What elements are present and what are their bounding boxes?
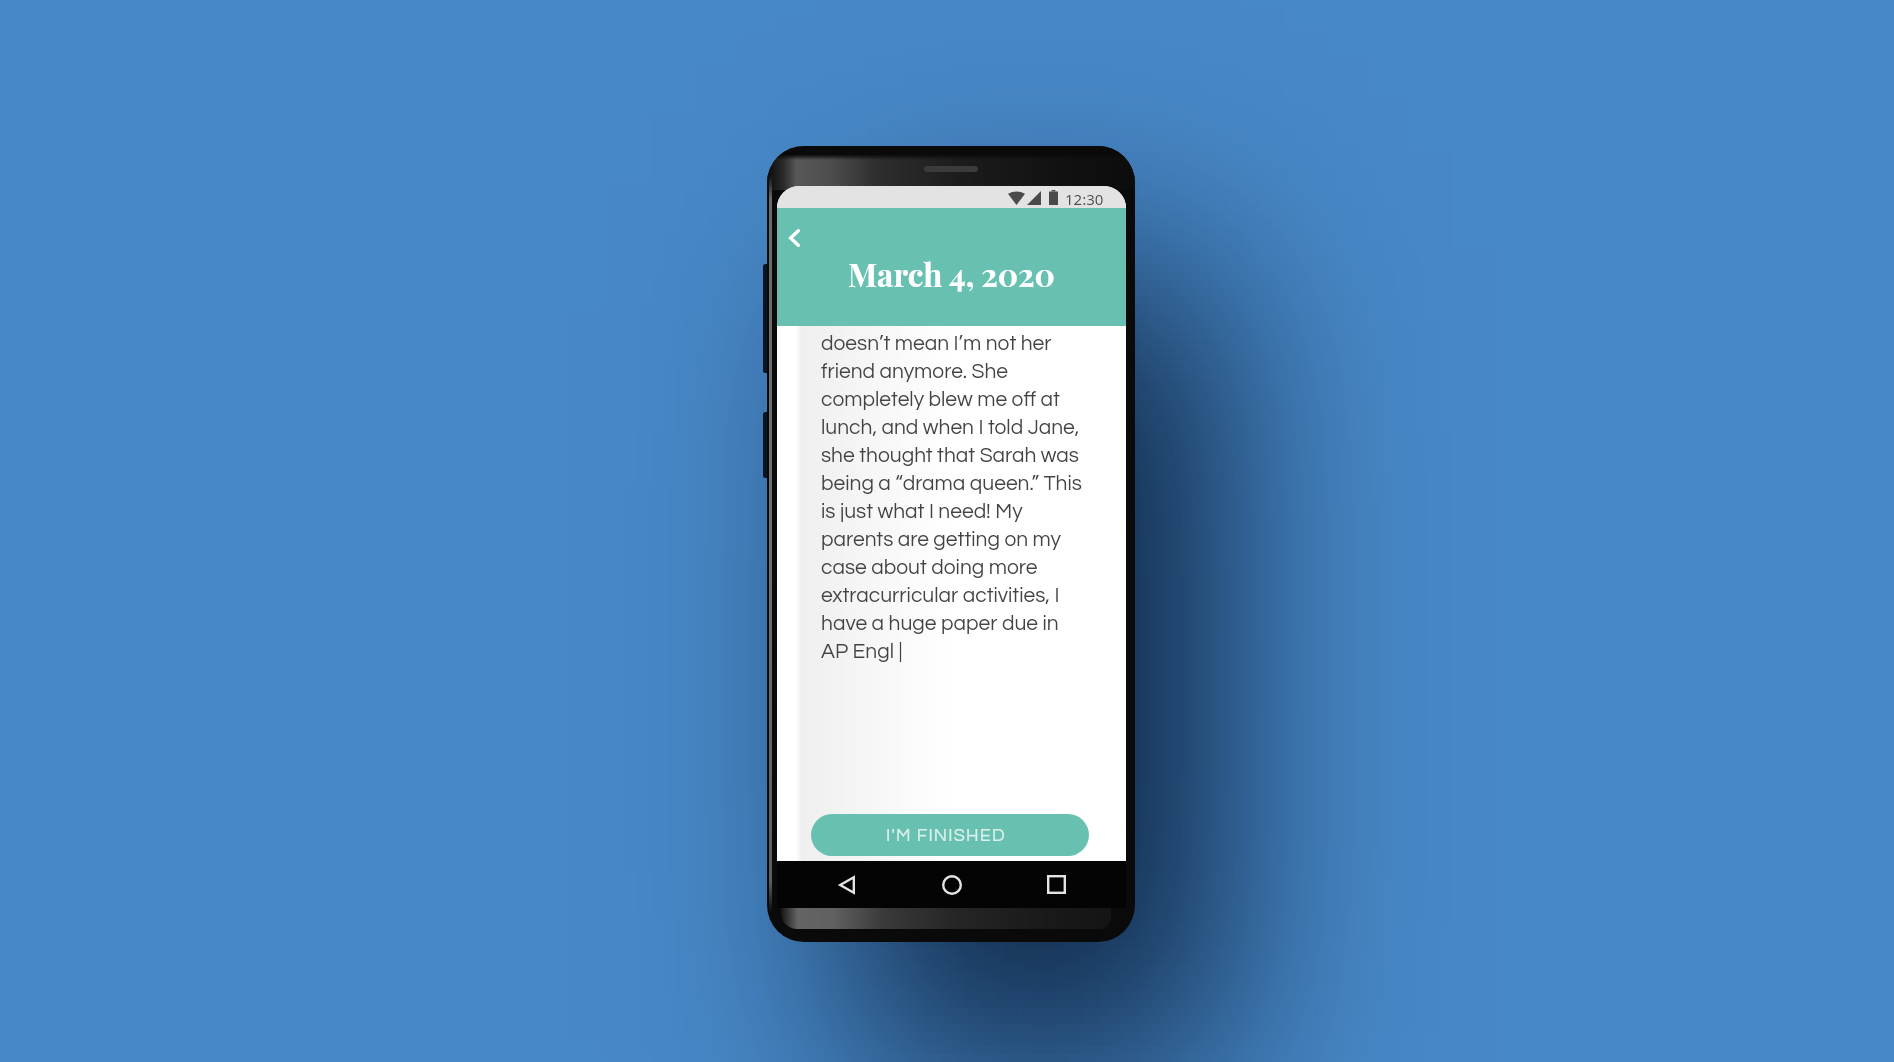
button[interactable]: Recent apps bbox=[1004, 875, 1109, 894]
staticText: I'M FINISHED bbox=[886, 826, 1006, 845]
staticText: doesn’t mean I’m not her friend anymore.… bbox=[821, 333, 1089, 663]
button[interactable]: Home bbox=[899, 875, 1004, 895]
staticText: 12:30 bbox=[1065, 189, 1104, 209]
button[interactable]: Back bbox=[794, 876, 899, 894]
staticText: March 4, 2020 bbox=[848, 253, 1055, 295]
button[interactable]: I'M FINISHED bbox=[811, 814, 1089, 856]
button[interactable]: Back bbox=[779, 223, 809, 253]
